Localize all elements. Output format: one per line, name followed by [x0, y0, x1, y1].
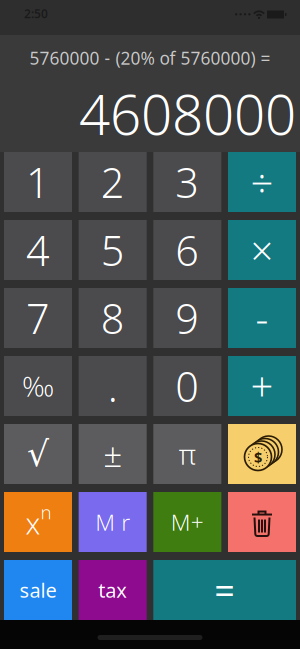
button[interactable]: =: [153, 560, 296, 620]
staticText: 5760000 - (20% of 5760000) =: [29, 46, 270, 69]
staticText: 5: [101, 223, 125, 277]
button[interactable]: M r: [79, 492, 147, 552]
staticText: 4: [26, 223, 50, 277]
button[interactable]: .: [79, 356, 147, 416]
button[interactable]: x: [4, 492, 72, 552]
staticText: π: [179, 435, 196, 473]
staticText: =: [214, 566, 235, 614]
button[interactable]: 7: [4, 288, 72, 348]
button[interactable]: 3: [153, 152, 221, 212]
staticText: √: [27, 434, 49, 474]
staticText: n: [40, 500, 51, 524]
staticText: 8: [101, 291, 125, 345]
button[interactable]: sale: [4, 560, 72, 620]
button[interactable]: π: [153, 424, 221, 484]
staticText: 6: [175, 223, 199, 277]
button[interactable]: ÷: [228, 152, 296, 212]
staticText: $: [254, 447, 262, 467]
button[interactable]: Currency: [228, 424, 296, 484]
button[interactable]: +: [228, 356, 296, 416]
staticText: 7: [26, 291, 50, 345]
staticText: ‰: [22, 367, 54, 405]
button[interactable]: ±: [79, 424, 147, 484]
button[interactable]: 0: [153, 356, 221, 416]
button[interactable]: 8: [79, 288, 147, 348]
button[interactable]: -: [228, 288, 296, 348]
button[interactable]: M+: [153, 492, 221, 552]
button[interactable]: 6: [153, 220, 221, 280]
button[interactable]: 5: [79, 220, 147, 280]
staticText: tax: [98, 577, 127, 603]
button[interactable]: √: [4, 424, 72, 484]
staticText: +: [250, 359, 273, 412]
staticText: -: [255, 291, 268, 344]
staticText: x: [25, 503, 40, 542]
staticText: ×: [250, 223, 273, 276]
button[interactable]: ‰: [4, 356, 72, 416]
button[interactable]: Clear: [228, 492, 296, 552]
button[interactable]: ×: [228, 220, 296, 280]
staticText: sale: [19, 577, 56, 603]
staticText: 2: [101, 155, 125, 209]
button[interactable]: 9: [153, 288, 221, 348]
staticText: 3: [175, 155, 199, 209]
staticText: M+: [171, 507, 204, 537]
button[interactable]: 2: [79, 152, 147, 212]
button[interactable]: 4: [4, 220, 72, 280]
staticText: M r: [95, 507, 130, 537]
staticText: 4608000: [79, 77, 296, 150]
staticText: ÷: [250, 155, 273, 208]
staticText: ±: [103, 432, 122, 476]
staticText: 2:50: [24, 5, 48, 21]
staticText: 9: [175, 291, 199, 345]
staticText: 1: [26, 155, 50, 209]
button[interactable]: tax: [79, 560, 147, 620]
staticText: .: [108, 359, 118, 413]
staticText: 0: [175, 359, 199, 413]
button[interactable]: 1: [4, 152, 72, 212]
